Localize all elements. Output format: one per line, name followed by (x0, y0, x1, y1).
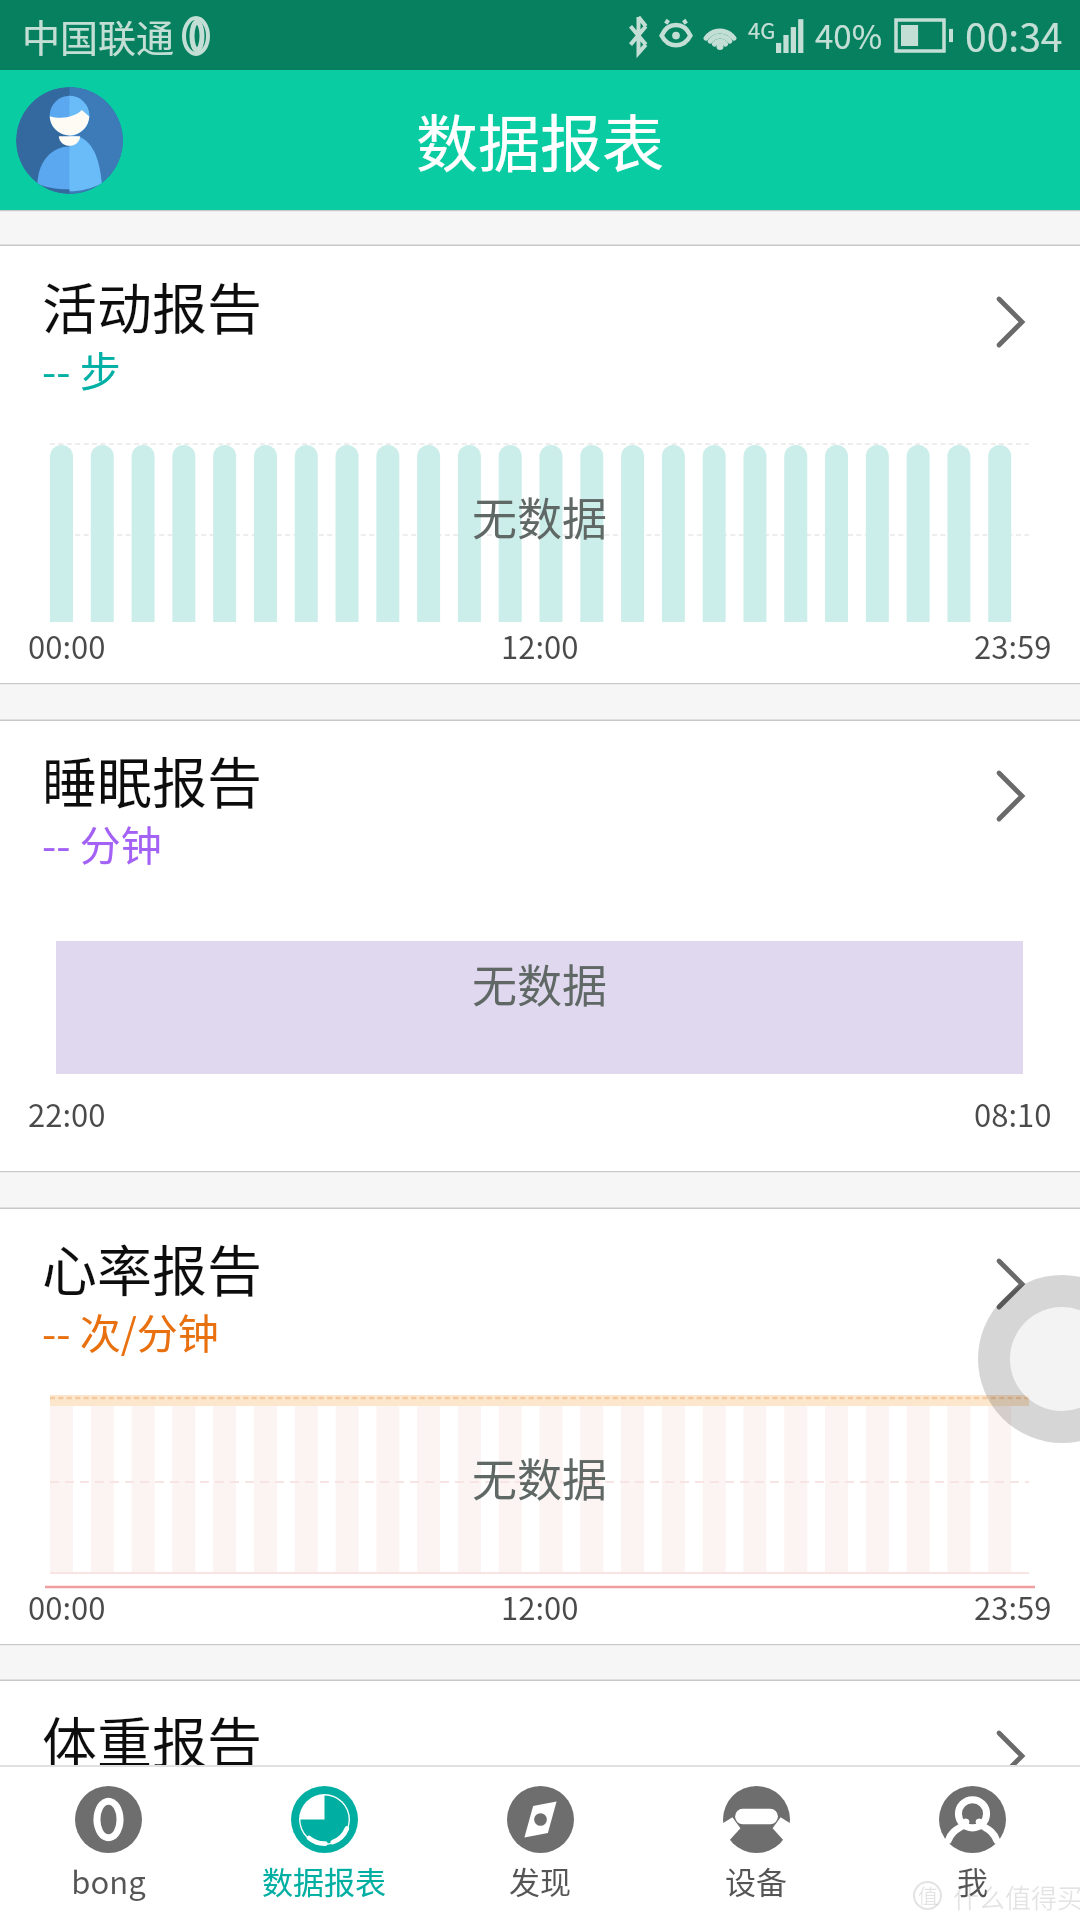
staticText: 睡眠报告 (42, 739, 263, 819)
staticText: 23:59 (974, 623, 1052, 668)
staticText: 23:59 (974, 1584, 1052, 1629)
staticText: 心率报告 (42, 1227, 263, 1307)
staticText: 无数据 (472, 951, 608, 1016)
button[interactable]: 心率报告 (0, 1209, 1080, 1359)
staticText: 无数据 (472, 1445, 608, 1510)
button[interactable]: 发现 (432, 1767, 648, 1920)
staticText: 发现 (509, 1858, 571, 1903)
staticText: 体重报告 (42, 1699, 263, 1779)
staticText: 什么值得买 (953, 1878, 1080, 1916)
button[interactable]: 活动报告 (0, 247, 1080, 397)
staticText: 12:00 (501, 623, 579, 668)
staticText: 22:00 (28, 1091, 106, 1136)
staticText: -- 公斤 (42, 1773, 162, 1832)
staticText: 我 (957, 1858, 988, 1903)
button[interactable]: 设备 (648, 1767, 864, 1920)
staticText: 00:00 (28, 1584, 106, 1629)
staticText: -- 步 (42, 339, 121, 398)
button[interactable]: 数据报表 (216, 1767, 432, 1920)
staticText: 00:34 (965, 7, 1063, 63)
button[interactable]: 睡眠报告 (0, 721, 1080, 871)
button[interactable]: bong (0, 1767, 216, 1920)
staticText: 值 (918, 1881, 938, 1910)
staticText: 08:10 (974, 1091, 1052, 1136)
staticText: 活动报告 (42, 265, 263, 345)
staticText: 00:00 (28, 623, 106, 668)
staticText: -- 次/分钟 (42, 1301, 219, 1360)
button[interactable]: 体重报告 (0, 1681, 1080, 1831)
staticText: -- 分钟 (42, 813, 162, 872)
staticText: 无数据 (472, 484, 608, 549)
staticText: 12:00 (501, 1584, 579, 1629)
staticText: 设备 (725, 1858, 787, 1903)
staticText: 数据报表 (262, 1858, 386, 1903)
staticText: 40% (815, 11, 883, 59)
staticText: 4G (748, 13, 776, 45)
button[interactable]: Profile (16, 87, 123, 194)
button[interactable]: 我 (864, 1767, 1080, 1920)
staticText: 中国联通 (22, 8, 175, 63)
staticText: 数据报表 (416, 95, 665, 185)
staticText: bong (71, 1858, 146, 1903)
